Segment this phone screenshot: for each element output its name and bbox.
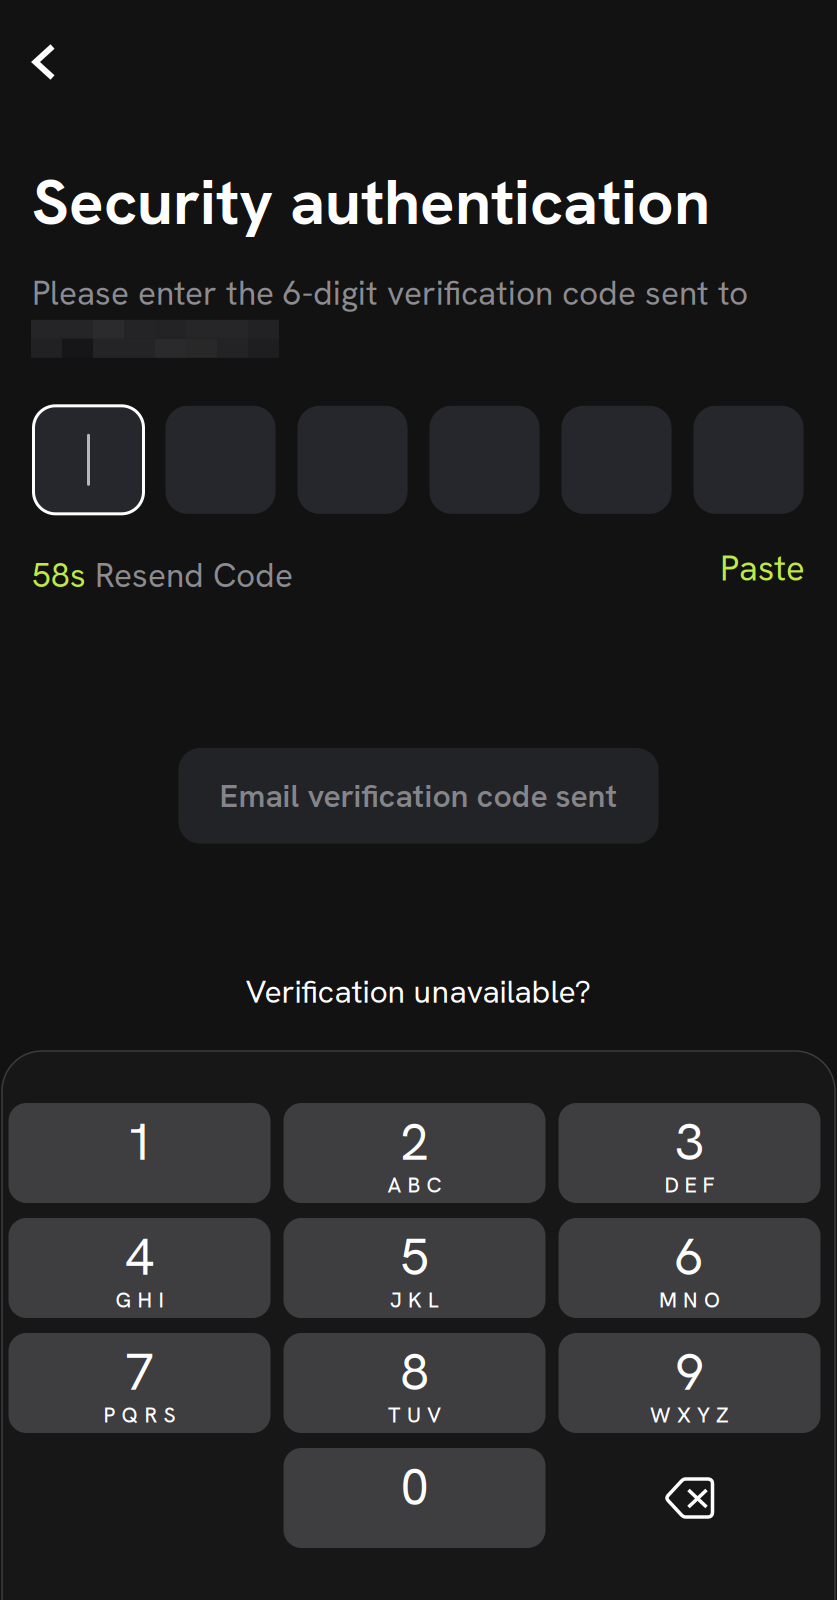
staticText: A B C bbox=[387, 1171, 441, 1199]
button[interactable]: Verification unavailable? bbox=[245, 971, 591, 1012]
staticText: Please enter the 6-digit verification co… bbox=[32, 271, 748, 315]
staticText: 5 bbox=[400, 1224, 428, 1290]
staticText: 8 bbox=[400, 1339, 428, 1405]
button[interactable]: 8 bbox=[283, 1333, 545, 1433]
button[interactable]: 5 bbox=[283, 1218, 545, 1318]
button[interactable]: 3 bbox=[558, 1103, 820, 1203]
staticText: 1 bbox=[125, 1109, 153, 1175]
button[interactable]: 7 bbox=[8, 1333, 270, 1433]
button[interactable]: Paste bbox=[720, 553, 805, 598]
staticText: Security authentication bbox=[32, 160, 710, 243]
button[interactable]: Back bbox=[12, 30, 76, 94]
staticText: P Q R S bbox=[103, 1401, 175, 1429]
staticText: T U V bbox=[388, 1401, 441, 1429]
button[interactable]: 6 bbox=[558, 1218, 820, 1318]
button[interactable]: 58s bbox=[32, 554, 293, 597]
staticText: J K L bbox=[390, 1286, 439, 1314]
staticText: G H I bbox=[115, 1286, 163, 1314]
button[interactable]: 0 bbox=[283, 1448, 545, 1548]
staticText: 9 bbox=[675, 1339, 703, 1405]
staticText: Verification unavailable? bbox=[245, 971, 591, 1012]
staticText: 2 bbox=[400, 1109, 428, 1175]
staticText: 4 bbox=[125, 1224, 153, 1290]
staticText: 0 bbox=[400, 1454, 428, 1520]
staticText: 58s bbox=[32, 554, 86, 597]
staticText: D E F bbox=[664, 1171, 714, 1199]
button[interactable]: 9 bbox=[558, 1333, 820, 1433]
staticText: Resend Code bbox=[95, 554, 293, 597]
staticText: 6 bbox=[675, 1224, 703, 1290]
staticText: Paste bbox=[720, 546, 805, 591]
button[interactable]: 1 bbox=[8, 1103, 270, 1203]
button[interactable]: Delete bbox=[558, 1448, 820, 1548]
staticText: 3 bbox=[675, 1109, 703, 1175]
staticText: M N O bbox=[659, 1286, 720, 1314]
button[interactable]: 4 bbox=[8, 1218, 270, 1318]
button[interactable]: 2 bbox=[283, 1103, 545, 1203]
staticText: Email verification code sent bbox=[219, 775, 617, 817]
staticText: W X Y Z bbox=[650, 1401, 729, 1429]
staticText: 7 bbox=[125, 1339, 153, 1405]
